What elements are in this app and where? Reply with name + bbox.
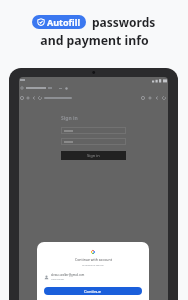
other: Toolbar action: [141, 96, 145, 100]
other: Toolbar action: [26, 96, 30, 100]
staticText: passwords: [92, 14, 156, 30]
staticText: Autofill: [47, 16, 81, 28]
staticText: Sign in: [87, 153, 100, 158]
staticText: Sign in: [61, 115, 78, 122]
button[interactable]: Sign in: [61, 151, 126, 160]
staticText: Continue with account: [75, 257, 112, 262]
staticText: and payment info: [40, 32, 149, 49]
other: Toolbar action: [32, 96, 36, 100]
button[interactable]: Continue: [44, 287, 142, 295]
staticText: Alexa Walker: [51, 278, 65, 281]
staticText: alexa.c.walker@gmail.com: [51, 273, 85, 277]
other: Autofill: [37, 18, 45, 26]
other: Toolbar action: [162, 96, 166, 100]
other: Toolbar action: [155, 96, 159, 100]
other: Toolbar action: [148, 96, 152, 100]
button[interactable]: alexa.c.walker@gmail.com: [44, 272, 142, 282]
staticText: Continue: [84, 289, 102, 294]
other: Toolbar action: [38, 96, 42, 100]
other: Toolbar action: [20, 96, 24, 100]
button[interactable]: Autofill: [32, 15, 86, 29]
staticText: to continue to site.com: [82, 264, 104, 267]
